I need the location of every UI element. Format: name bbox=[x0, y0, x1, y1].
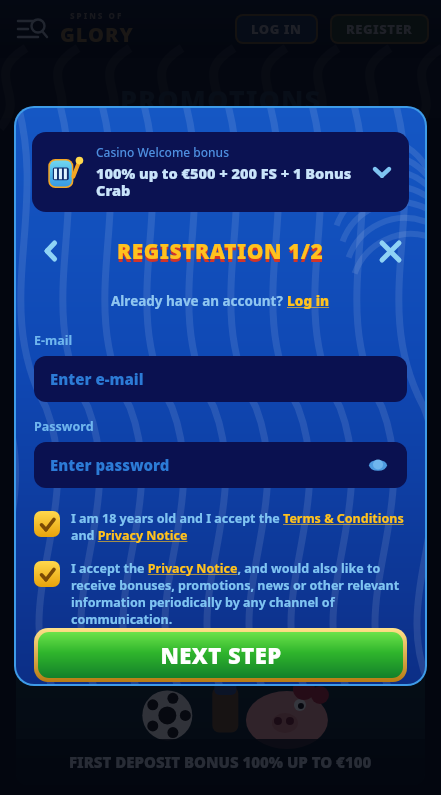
staticText: Casino Welcome bonus bbox=[96, 144, 229, 160]
staticText: LOG IN bbox=[251, 20, 302, 38]
button[interactable]: NEXT STEP bbox=[38, 632, 403, 678]
button[interactable]: REGISTER bbox=[346, 16, 413, 42]
staticText: Password bbox=[34, 418, 94, 435]
staticText: Already have an account? bbox=[111, 292, 287, 310]
staticText: 100% up to €500 + 200 FS + 1 Bonus Crab bbox=[96, 163, 361, 200]
button[interactable]: LOG IN bbox=[251, 16, 302, 42]
staticText: SPINS OF bbox=[70, 10, 124, 21]
button[interactable]: Enter password bbox=[34, 442, 407, 488]
button[interactable]: Casino Welcome bonus bbox=[32, 132, 409, 212]
staticText: NEXT STEP bbox=[160, 640, 282, 670]
staticText: FIRST DEPOSIT BONUS 100% UP TO €100 bbox=[69, 752, 372, 772]
button[interactable]: FIRST DEPOSIT BONUS 100% UP TO €100 bbox=[16, 665, 425, 785]
staticText: REGISTRATION 1/2 bbox=[117, 240, 324, 269]
staticText: GLORY bbox=[60, 21, 134, 48]
staticText: Enter password bbox=[50, 455, 170, 475]
staticText: Enter e-mail bbox=[50, 369, 144, 389]
button[interactable]: Log in bbox=[287, 292, 330, 310]
button[interactable]: Back bbox=[34, 234, 68, 268]
button[interactable]: Enter e-mail bbox=[34, 356, 407, 402]
staticText: I accept the Privacy Notice, and would a… bbox=[71, 560, 407, 628]
button[interactable]: Expand bonus details bbox=[369, 159, 395, 185]
staticText: Log in bbox=[287, 292, 330, 310]
button[interactable]: Show password bbox=[365, 452, 391, 478]
button[interactable]: I am 18 years old and I accept the Terms… bbox=[34, 510, 407, 544]
button[interactable]: Menu and search bbox=[14, 11, 50, 47]
staticText: I am 18 years old and I accept the Terms… bbox=[71, 510, 407, 544]
button[interactable]: I accept the Privacy Notice, and would a… bbox=[34, 560, 407, 628]
staticText: PROMOTIONS bbox=[120, 81, 322, 118]
button[interactable]: Close bbox=[373, 234, 407, 268]
staticText: E-mail bbox=[34, 332, 73, 349]
staticText: REGISTRATION 1/2 bbox=[117, 237, 324, 266]
staticText: REGISTER bbox=[346, 20, 413, 38]
